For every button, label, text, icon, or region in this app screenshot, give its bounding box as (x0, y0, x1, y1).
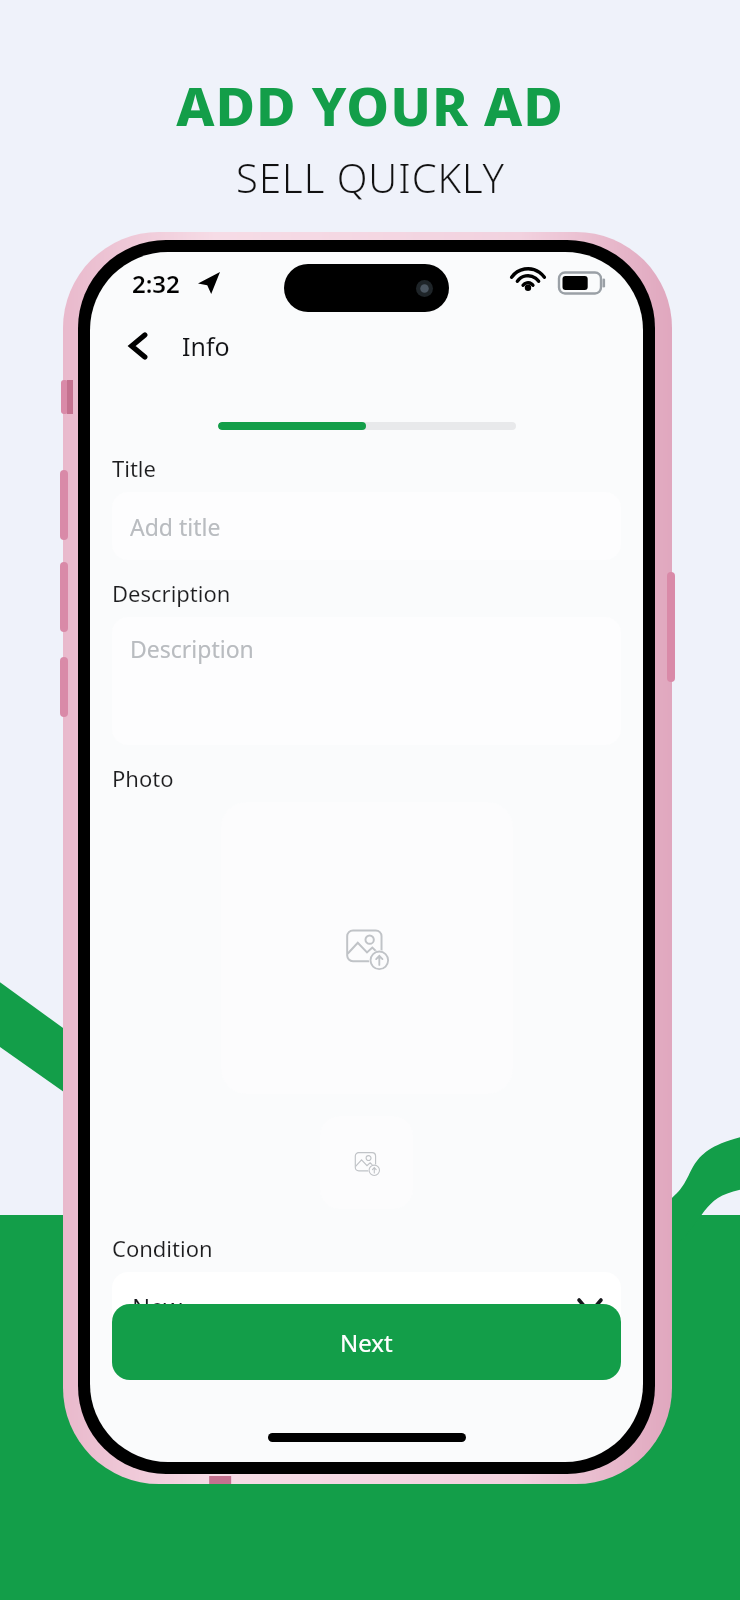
staticText: SELL QUICKLY (236, 150, 505, 204)
button[interactable]: Back (114, 320, 166, 372)
button[interactable]: Add another photo (320, 1116, 413, 1209)
staticText: Info (182, 329, 230, 363)
button[interactable]: Add photo (221, 802, 513, 1094)
staticText: New (132, 1290, 183, 1323)
staticText: ADD YOUR AD (176, 68, 564, 142)
button[interactable]: New (112, 1272, 621, 1340)
button[interactable]: Add title (112, 492, 621, 560)
staticText: Condition (112, 1233, 213, 1263)
staticText: Add title (130, 511, 221, 542)
button[interactable]: Description (112, 617, 621, 745)
staticText: Photo (112, 763, 174, 793)
button[interactable]: Next (112, 1304, 621, 1380)
staticText: Next (340, 1326, 393, 1359)
staticText: Description (112, 578, 231, 608)
staticText: Title (112, 453, 156, 483)
staticText: Description (130, 633, 254, 664)
staticText: 2:32 (132, 267, 180, 300)
